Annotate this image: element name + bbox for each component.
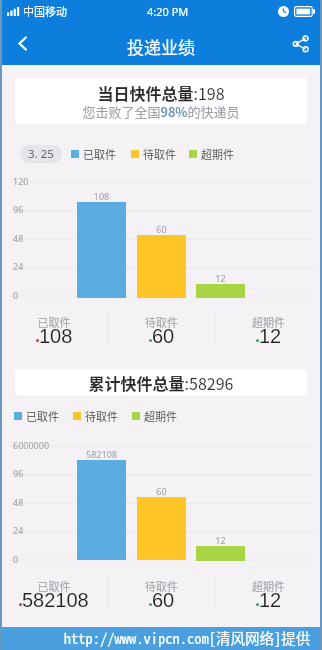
staticText: 60 — [137, 223, 186, 235]
staticText: 3. 25 — [28, 146, 54, 162]
staticText: 108 — [77, 190, 126, 202]
staticText: 582108 — [77, 448, 126, 460]
staticText: 投递业绩 — [0, 34, 322, 59]
staticText: 中国移动 — [23, 3, 67, 19]
staticText: 已取件 — [83, 146, 116, 162]
staticText: 60 — [137, 485, 186, 497]
staticText: 12 — [259, 589, 282, 611]
staticText: 12 — [259, 325, 282, 347]
staticText: 待取件 — [143, 146, 176, 162]
staticText: 已取件 — [0, 578, 108, 594]
staticText: 待取件 — [85, 408, 118, 424]
staticText: 待取件 — [108, 578, 215, 594]
staticText: 0 — [13, 553, 19, 565]
button[interactable]: 待取件 — [108, 570, 215, 614]
staticText: 582108 — [22, 589, 89, 611]
staticText: 12 — [196, 534, 245, 546]
staticText: 待取件 — [108, 314, 215, 330]
staticText: 超期件 — [215, 314, 322, 330]
button[interactable]: 累计快件总量:58296 — [15, 371, 307, 394]
staticText: 超期件 — [215, 578, 322, 594]
staticText: 您击败了全国98%的快递员 — [15, 102, 307, 121]
staticText: 超期件 — [201, 146, 234, 162]
staticText: 已取件 — [0, 314, 108, 330]
button[interactable]: Share — [278, 22, 322, 65]
staticText: 当日快件总量:198 — [15, 81, 307, 104]
button[interactable]: 当日快件总量:198 — [15, 78, 307, 124]
button[interactable]: 3. 25 — [20, 145, 62, 163]
button[interactable]: 已取件 — [0, 570, 108, 614]
button[interactable]: 待取件 — [108, 306, 215, 350]
button[interactable]: 超期件 — [215, 570, 322, 614]
staticText: http://www.vipcn.com[清风网络]提供 — [26, 627, 322, 648]
button[interactable]: 已取件 — [0, 306, 108, 350]
staticText: 96 — [13, 467, 24, 479]
staticText: 48 — [13, 496, 24, 508]
staticText: 4:20 PM — [147, 4, 189, 19]
staticText: 已取件 — [26, 408, 59, 424]
staticText: 0 — [13, 289, 19, 301]
staticText: 24 — [13, 260, 24, 272]
staticText: 108 — [39, 325, 73, 347]
staticText: 12 — [196, 272, 245, 284]
staticText: 48 — [13, 232, 24, 244]
staticText: 60 — [152, 589, 175, 611]
button[interactable]: 超期件 — [215, 306, 322, 350]
staticText: 6000000 — [13, 439, 50, 451]
staticText: 24 — [13, 524, 24, 536]
staticText: 120 — [13, 175, 29, 187]
staticText: 96 — [13, 203, 24, 215]
staticText: 60 — [152, 325, 175, 347]
button[interactable]: Back — [0, 22, 44, 65]
staticText: 超期件 — [144, 408, 177, 424]
